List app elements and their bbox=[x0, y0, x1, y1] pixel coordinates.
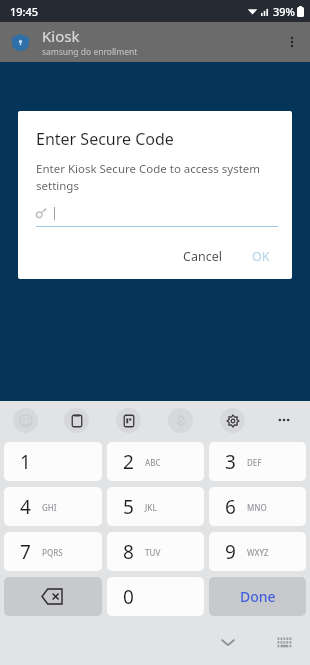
staticText: MNO bbox=[247, 502, 267, 513]
button[interactable]: OK bbox=[244, 242, 278, 271]
staticText: Enter Kiosk Secure Code to access system… bbox=[36, 161, 278, 193]
staticText: 0 bbox=[123, 584, 134, 610]
button[interactable]: 6 bbox=[209, 487, 306, 526]
button[interactable]: Emoji bbox=[0, 401, 51, 439]
button[interactable]: 2 bbox=[107, 442, 204, 481]
staticText: 1 bbox=[20, 449, 31, 475]
button[interactable]: Cancel bbox=[175, 242, 230, 271]
button[interactable]: More options bbox=[274, 24, 310, 60]
staticText: JKL bbox=[145, 502, 157, 513]
button[interactable]: Backspace bbox=[4, 577, 102, 616]
button[interactable]: 7 bbox=[4, 532, 102, 571]
button[interactable]: More bbox=[258, 401, 310, 439]
staticText: Cancel bbox=[183, 248, 222, 265]
button[interactable]: Clipboard bbox=[51, 401, 102, 439]
staticText: PQRS bbox=[42, 547, 63, 558]
staticText: Enter Secure Code bbox=[36, 128, 174, 150]
staticText: TUV bbox=[145, 547, 161, 558]
staticText: 2 bbox=[123, 449, 134, 475]
button[interactable]: Switch keyboard bbox=[264, 622, 304, 662]
staticText: WXYZ bbox=[247, 547, 269, 558]
staticText: GHI bbox=[42, 502, 57, 513]
staticText: Done bbox=[240, 587, 276, 606]
staticText: OK bbox=[252, 248, 270, 265]
button[interactable]: Done bbox=[209, 577, 306, 616]
staticText: 39% bbox=[273, 4, 295, 19]
button[interactable]: 0 bbox=[107, 577, 204, 616]
button[interactable]: Hide keyboard bbox=[208, 622, 248, 662]
button[interactable]: 8 bbox=[107, 532, 204, 571]
staticText: 8 bbox=[123, 539, 134, 565]
button[interactable]: 1 bbox=[4, 442, 102, 481]
button[interactable]: Stickers bbox=[102, 401, 154, 439]
staticText: ABC bbox=[145, 457, 161, 468]
staticText: 9 bbox=[225, 539, 236, 565]
button[interactable]: 4 bbox=[4, 487, 102, 526]
staticText: 5 bbox=[123, 494, 134, 520]
staticText: Kiosk bbox=[42, 26, 80, 46]
staticText: 7 bbox=[20, 539, 31, 565]
staticText: samsung do enrollment bbox=[42, 46, 138, 58]
button[interactable]: 3 bbox=[209, 442, 306, 481]
staticText: 3 bbox=[225, 449, 236, 475]
staticText: 4 bbox=[20, 494, 31, 520]
button[interactable]: Voice input bbox=[154, 401, 206, 439]
staticText: DEF bbox=[247, 457, 262, 468]
button[interactable]: 5 bbox=[107, 487, 204, 526]
staticText: 19:45 bbox=[10, 4, 39, 19]
button[interactable]: Keyboard settings bbox=[206, 401, 258, 439]
button[interactable]: 9 bbox=[209, 532, 306, 571]
staticText: 6 bbox=[225, 494, 236, 520]
